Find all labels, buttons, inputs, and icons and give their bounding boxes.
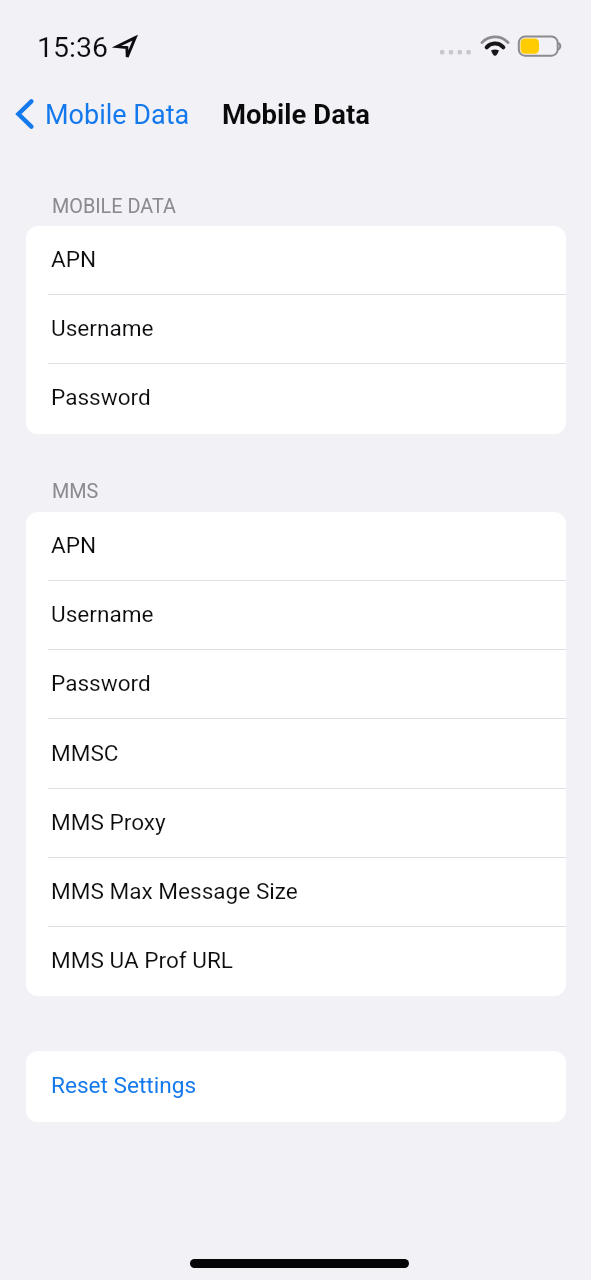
button[interactable]: Username	[26, 295, 566, 364]
button[interactable]: Mobile Data	[8, 92, 200, 140]
staticText: Mobile Data	[222, 98, 370, 130]
staticText: MMS Proxy	[51, 809, 166, 835]
staticText: 15:36	[37, 31, 108, 64]
staticText: MMS	[52, 480, 99, 503]
button[interactable]: Password	[26, 650, 566, 719]
staticText: Username	[51, 601, 154, 627]
staticText: MOBILE DATA	[52, 195, 176, 218]
staticText: Password	[51, 670, 151, 696]
button[interactable]: MMS UA Prof URL	[26, 927, 566, 996]
staticText: Username	[51, 315, 154, 341]
staticText: MMSC	[51, 740, 119, 766]
button[interactable]: APN	[26, 226, 566, 295]
staticText: APN	[51, 246, 97, 272]
button[interactable]: Password	[26, 364, 566, 433]
staticText: APN	[51, 532, 97, 558]
staticText: MMS Max Message Size	[51, 878, 298, 904]
button[interactable]: MMS Proxy	[26, 789, 566, 858]
staticText: Password	[51, 384, 151, 410]
button[interactable]: MMSC	[26, 720, 566, 789]
staticText: MMS UA Prof URL	[51, 947, 233, 973]
button[interactable]: APN	[26, 512, 566, 581]
staticText: Mobile Data	[45, 99, 190, 131]
button[interactable]: MMS Max Message Size	[26, 858, 566, 927]
button[interactable]: Reset Settings	[26, 1051, 566, 1122]
button[interactable]: Username	[26, 581, 566, 650]
staticText: Reset Settings	[51, 1072, 197, 1098]
